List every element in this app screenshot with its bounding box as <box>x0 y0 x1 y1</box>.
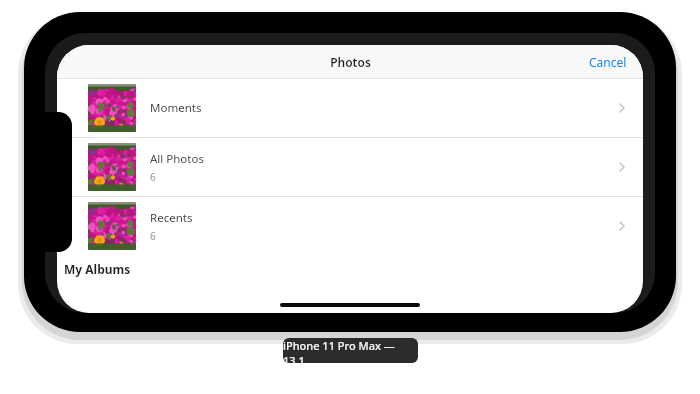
staticText: Moments <box>150 100 202 116</box>
staticText: Cancel <box>589 54 627 70</box>
button[interactable]: Moments <box>57 79 643 137</box>
button[interactable]: Recents <box>57 197 643 255</box>
other: Open album <box>615 157 629 177</box>
staticText: All Photos <box>150 151 204 167</box>
staticText: My Albums <box>64 261 131 277</box>
staticText: 6 <box>150 229 156 243</box>
staticText: iPhone 11 Pro Max — 13.1 <box>283 338 418 363</box>
other: Open album <box>615 216 629 236</box>
button[interactable]: Cancel <box>573 48 643 76</box>
button[interactable]: All Photos <box>57 138 643 196</box>
staticText: 6 <box>150 170 156 184</box>
staticText: Photos <box>330 54 371 70</box>
staticText: Recents <box>150 210 193 226</box>
other: Open album <box>615 98 629 118</box>
